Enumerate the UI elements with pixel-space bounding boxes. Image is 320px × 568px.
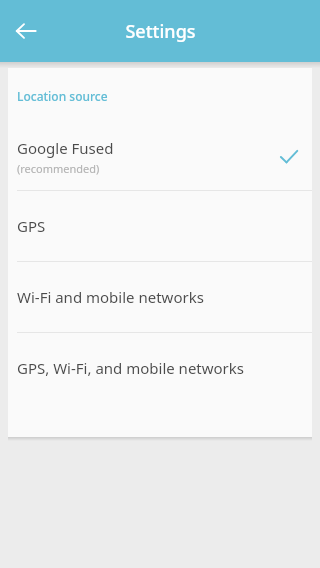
button[interactable]: Wi-Fi and mobile networks	[8, 262, 312, 332]
button[interactable]: GPS	[8, 191, 312, 261]
button[interactable]: Google Fused	[8, 124, 312, 190]
staticText: (recommended)	[17, 161, 100, 176]
button[interactable]: GPS, Wi-Fi, and mobile networks	[8, 333, 312, 403]
staticText: Location source	[17, 88, 108, 104]
staticText: Wi-Fi and mobile networks	[17, 287, 204, 307]
staticText: GPS	[17, 216, 46, 236]
staticText: Settings	[125, 19, 196, 44]
staticText: Google Fused	[17, 138, 114, 158]
staticText: GPS, Wi-Fi, and mobile networks	[17, 358, 245, 378]
button[interactable]: Back	[4, 9, 48, 53]
